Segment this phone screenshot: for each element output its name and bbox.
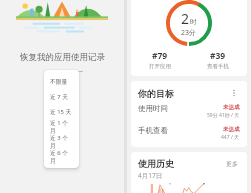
staticText: 手机查看 [138,126,221,135]
staticText: 你的目标 [138,88,228,99]
staticText: 447 / 天 [221,134,240,141]
button[interactable]: 近 1 个月 [44,119,79,134]
staticText: 未达成 [223,104,240,111]
button[interactable]: 不限量 [44,74,79,89]
button[interactable]: 更多选项 [228,87,240,99]
button[interactable]: 近 15 天 [44,104,79,119]
staticText: 近 7 天 [50,93,68,101]
button[interactable]: 近 6 个月 [44,149,79,164]
staticText: 恢复我的应用使用记录 [20,52,105,63]
staticText: 不限量 [50,78,68,85]
staticText: 2 [181,9,190,28]
staticText: 4月17日 [138,171,163,180]
staticText: 时 [190,18,197,26]
staticText: 近 6 个月 [50,149,73,164]
staticText: 查看手机 [207,63,229,70]
staticText: 打开应用 [149,63,171,70]
staticText: 未达成 [223,126,240,133]
staticText: #79 [152,50,168,62]
staticText: 近 3 个月 [50,134,73,149]
button[interactable]: 使用时间 [138,104,240,119]
staticText: 近 1 个月 [50,119,73,134]
button[interactable]: 近 7 天 [44,89,79,104]
staticText: 近 15 天 [50,108,72,116]
button[interactable]: 手机查看 [138,126,240,141]
staticText: #39 [210,50,226,62]
staticText: 使用时间 [138,104,207,113]
staticText: 23分 [181,28,197,38]
button[interactable]: #39 [189,50,247,70]
staticText: 使用历史 [138,158,174,169]
button[interactable]: #79 [131,50,189,70]
button[interactable]: 更多 [224,158,240,170]
button[interactable]: 近 3 个月 [44,134,79,149]
staticText: 更多 [226,160,238,168]
staticText: 59分 41秒 / 天 [207,112,240,119]
